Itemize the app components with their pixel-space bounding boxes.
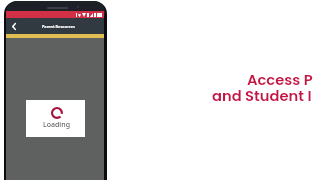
staticText: Parent Resources	[42, 24, 75, 29]
staticText: Loading	[43, 120, 70, 130]
staticText: and Student I	[212, 86, 312, 107]
button[interactable]: Back	[8, 20, 19, 33]
staticText: Access P	[247, 70, 313, 91]
